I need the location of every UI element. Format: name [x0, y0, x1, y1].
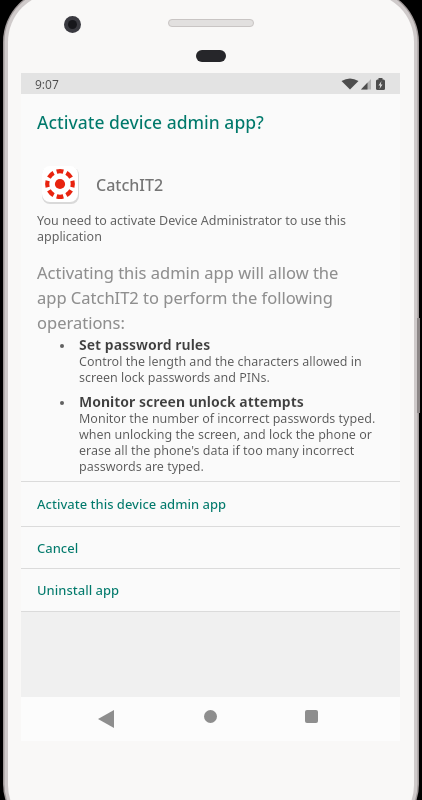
- staticText: Activate this device admin app: [37, 495, 227, 513]
- staticText: Control the length and the characters al…: [79, 353, 362, 385]
- staticText: You need to activate Device Administrato…: [37, 212, 347, 245]
- button[interactable]: [204, 710, 217, 723]
- staticText: Activate device admin app?: [37, 110, 264, 134]
- button[interactable]: Cancel: [21, 527, 400, 568]
- staticText: Cancel: [37, 539, 79, 557]
- button[interactable]: Activate this device admin app: [21, 482, 400, 526]
- staticText: Activating this admin app will allow the…: [37, 261, 339, 333]
- button[interactable]: [305, 710, 318, 723]
- button[interactable]: Uninstall app: [21, 569, 400, 611]
- staticText: Monitor the number of incorrect password…: [79, 410, 376, 475]
- staticText: CatchIT2: [96, 174, 164, 196]
- staticText: Uninstall app: [37, 581, 120, 599]
- staticText: Set password rules: [79, 335, 211, 354]
- button[interactable]: [98, 710, 114, 728]
- staticText: Monitor screen unlock attempts: [79, 392, 304, 411]
- staticText: 9:07: [35, 76, 59, 92]
